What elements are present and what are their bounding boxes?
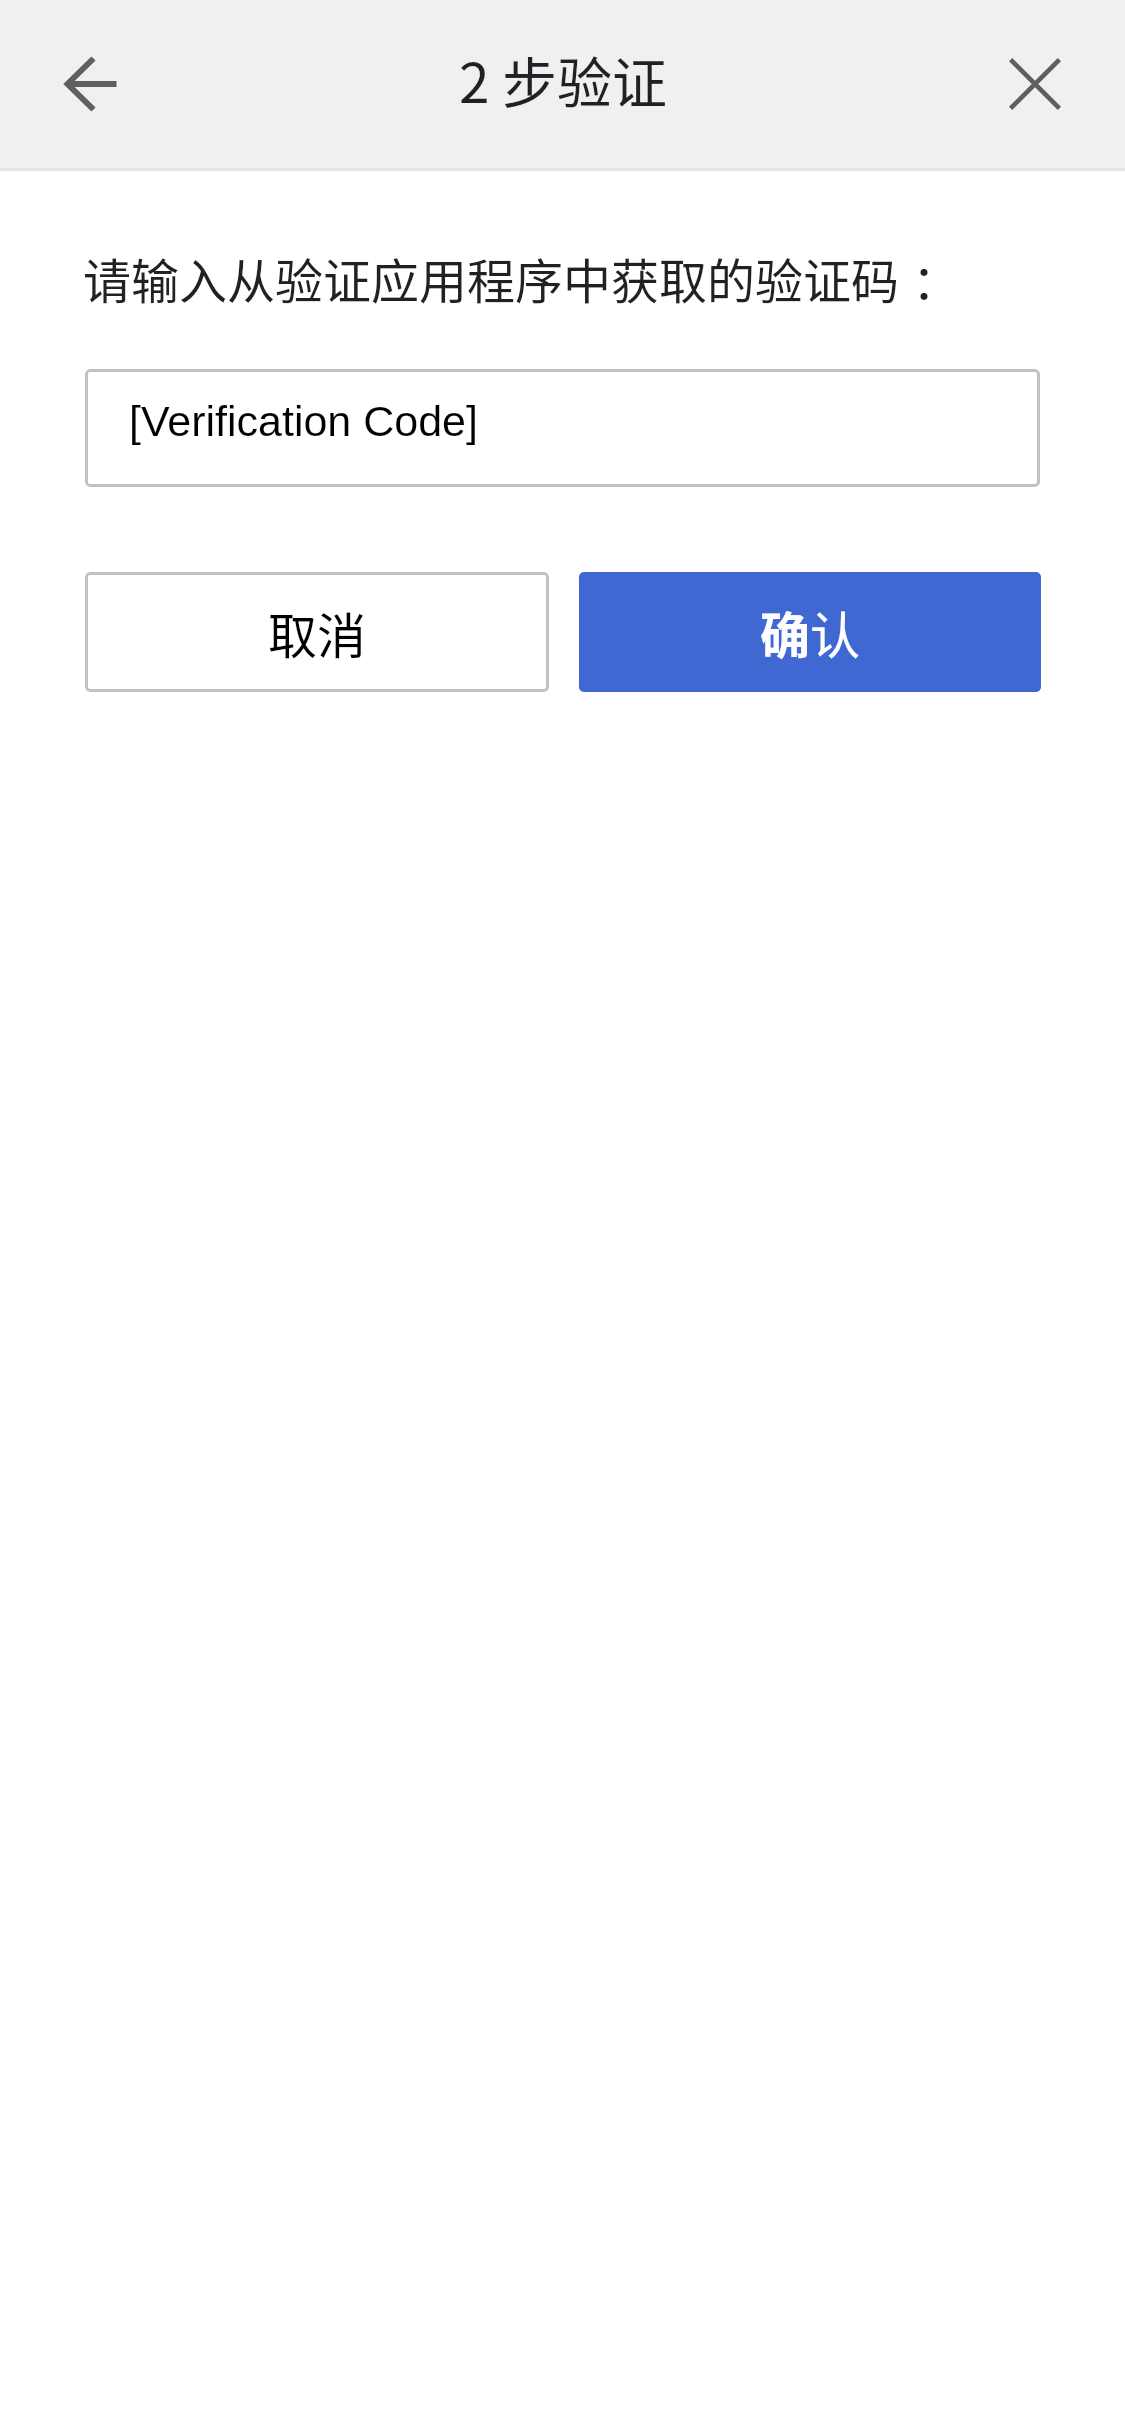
button[interactable]: [Verification Code] bbox=[85, 369, 1040, 487]
button[interactable]: 取消 bbox=[85, 572, 549, 692]
staticText: 请输入从验证应用程序中获取的验证码 bbox=[83, 243, 900, 313]
button[interactable]: 确认 bbox=[579, 572, 1041, 692]
staticText: [Verification Code] bbox=[129, 397, 478, 445]
staticText: 取消 bbox=[268, 597, 367, 668]
staticText: ： bbox=[912, 243, 961, 313]
button[interactable]: Back bbox=[23, 16, 159, 152]
staticText: 确认 bbox=[760, 596, 860, 668]
staticText: 2 步验证 bbox=[459, 39, 667, 119]
button[interactable]: Close bbox=[967, 16, 1103, 152]
